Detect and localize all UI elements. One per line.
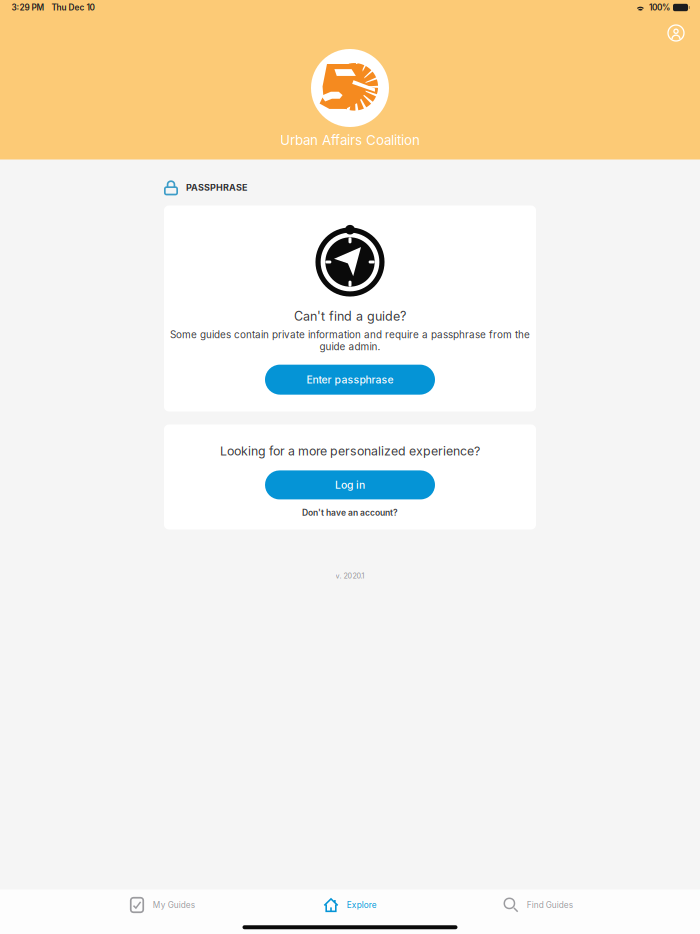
staticText: Log in [335,479,365,491]
button[interactable]: Don't have an account? [302,507,398,518]
staticText: Thu Dec 10 [51,2,94,12]
staticText: 3:29 PM [11,2,44,12]
staticText: Enter passphrase [306,373,393,386]
staticText: 100% [649,2,670,12]
button[interactable]: My Guides [68,889,256,920]
staticText: Can't find a guide? [294,308,406,324]
staticText: Urban Affairs Coalition [280,132,420,148]
staticText: Looking for a more personalized experien… [220,443,480,458]
button[interactable]: Enter passphrase [265,365,435,395]
staticText: guide admin. [319,341,380,353]
staticText: My Guides [153,900,195,910]
button[interactable]: Find Guides [444,889,632,920]
staticText: Some guides contain private information … [170,329,530,341]
staticText: Don't have an account? [302,507,398,518]
button[interactable]: Log in [265,470,435,499]
staticText: v. 2020.1 [335,571,364,580]
button[interactable]: Account [660,17,692,49]
button[interactable]: Explore [256,889,444,920]
staticText: Explore [347,900,377,910]
staticText: Find Guides [527,900,573,910]
staticText: PASSPHRASE [186,182,248,193]
